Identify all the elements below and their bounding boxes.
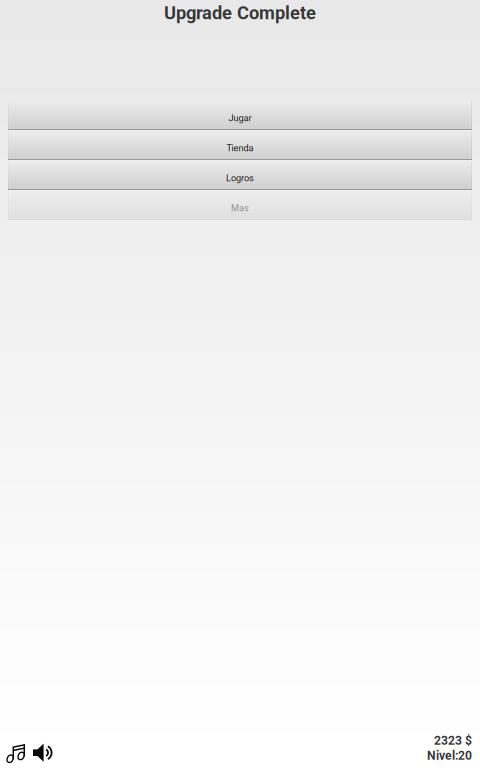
button[interactable]: Mas bbox=[8, 192, 472, 220]
button[interactable]: Music bbox=[6, 744, 26, 763]
button[interactable]: Tienda bbox=[8, 132, 472, 160]
button[interactable]: Sound bbox=[33, 744, 56, 763]
button[interactable]: Logros bbox=[8, 162, 472, 190]
staticText: Nivel:20 bbox=[427, 748, 472, 763]
staticText: Jugar bbox=[228, 113, 251, 123]
staticText: Upgrade Complete bbox=[164, 2, 316, 24]
staticText: Mas bbox=[231, 203, 249, 213]
staticText: 2323 $ bbox=[434, 733, 472, 748]
staticText: Tienda bbox=[226, 143, 253, 153]
button[interactable]: Jugar bbox=[8, 102, 472, 130]
staticText: Logros bbox=[226, 173, 254, 183]
